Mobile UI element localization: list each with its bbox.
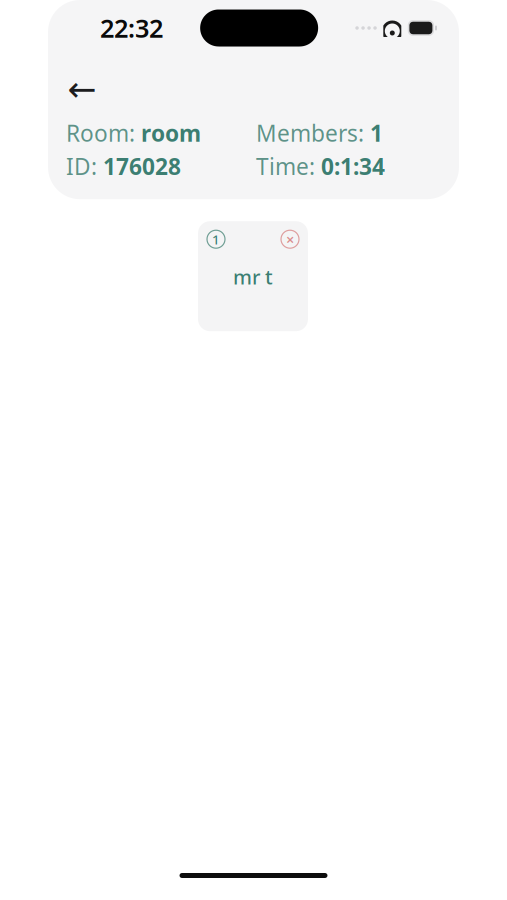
staticText: 0:1:34 — [321, 151, 385, 181]
staticText: 1 — [212, 230, 220, 248]
staticText: ID: — [66, 151, 97, 181]
staticText: 1 — [370, 118, 383, 148]
button[interactable]: Back — [60, 72, 104, 106]
staticText: 22:32 — [100, 11, 163, 45]
staticText: ← — [67, 69, 96, 109]
staticText: Room: — [66, 118, 135, 148]
staticText: mr t — [233, 263, 273, 290]
staticText: 176028 — [103, 151, 181, 181]
staticText: Members: — [256, 118, 364, 148]
staticText: × — [286, 229, 294, 249]
staticText: Time: — [256, 151, 315, 181]
button[interactable]: Remove player — [281, 230, 299, 248]
staticText: room — [141, 118, 201, 148]
